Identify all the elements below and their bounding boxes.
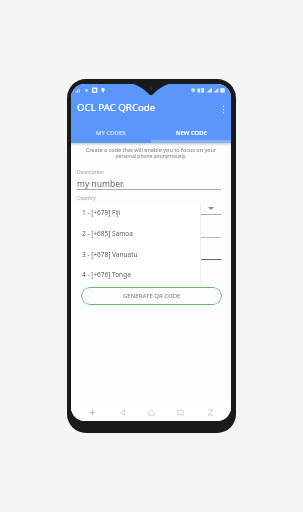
staticText: personal phone anonymously. <box>76 153 226 160</box>
staticText: Create a code that will enable you to fo… <box>76 146 226 153</box>
button[interactable]: More options <box>216 102 230 116</box>
staticText: 2 - [+685] Samoa <box>82 229 133 238</box>
staticText: Description <box>77 169 104 176</box>
button[interactable]: Home <box>143 404 159 420</box>
staticText: OCL PAC QRCode <box>77 101 156 114</box>
staticText: my number. <box>77 178 125 190</box>
button[interactable]: 3 - [+678] Vanuatu <box>71 244 201 265</box>
staticText: 4 - [+676] Tonga <box>82 270 131 279</box>
staticText: NEW CODE <box>176 129 207 137</box>
button[interactable]: 1 - [+679] Fiji <box>71 202 201 223</box>
staticText: GENERATE QR CODE <box>123 292 181 300</box>
button[interactable]: Screenshot <box>202 404 218 420</box>
button[interactable]: 4 - [+676] Tonga <box>71 265 201 284</box>
button[interactable]: Back <box>114 404 130 420</box>
staticText: Country <box>77 195 96 202</box>
button[interactable]: 2 - [+685] Samoa <box>71 223 201 244</box>
button[interactable]: NEW CODE <box>151 121 231 143</box>
staticText: 1 - [+679] Fiji <box>82 208 121 217</box>
button[interactable]: Assistant <box>84 404 100 420</box>
button[interactable]: Recents <box>172 404 188 420</box>
button[interactable]: GENERATE QR CODE <box>81 287 222 305</box>
staticText: MY CODES <box>96 129 126 137</box>
button[interactable]: MY CODES <box>71 121 151 143</box>
staticText: 3 - [+678] Vanuatu <box>82 250 138 259</box>
